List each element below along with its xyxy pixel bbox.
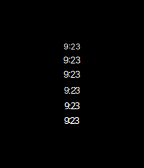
staticText: 9:23 — [63, 42, 80, 51]
staticText: 9:23 — [64, 83, 80, 96]
staticText: 9:23 — [64, 115, 80, 126]
staticText: 9:23 — [64, 99, 80, 112]
staticText: 9:23 — [63, 54, 81, 66]
staticText: 9:23 — [63, 69, 81, 80]
